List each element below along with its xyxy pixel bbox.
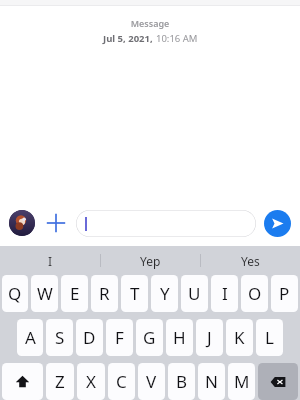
staticText: Jul 5, 2021, bbox=[103, 32, 156, 45]
button[interactable]: Yep bbox=[101, 246, 200, 275]
button[interactable]: N bbox=[198, 363, 225, 400]
button[interactable]: Yes bbox=[201, 246, 300, 275]
staticText: C bbox=[116, 370, 127, 393]
button[interactable]: O bbox=[241, 275, 268, 312]
staticText: Z bbox=[55, 370, 65, 393]
button[interactable]: Shift bbox=[2, 363, 43, 400]
button[interactable]: Z bbox=[46, 363, 74, 400]
button[interactable]: J bbox=[196, 319, 223, 356]
button[interactable]: A bbox=[17, 319, 43, 356]
button[interactable]: P bbox=[271, 275, 298, 312]
button[interactable]: L bbox=[256, 319, 283, 356]
button[interactable]: F bbox=[106, 319, 133, 356]
button[interactable]: G bbox=[136, 319, 163, 356]
staticText: F bbox=[115, 326, 124, 349]
staticText: I bbox=[48, 253, 53, 269]
staticText: W bbox=[37, 282, 53, 305]
button[interactable] bbox=[76, 210, 256, 237]
button[interactable]: I bbox=[211, 275, 238, 312]
staticText: O bbox=[248, 282, 262, 305]
button[interactable]: Y bbox=[151, 275, 178, 312]
button[interactable]: D bbox=[76, 319, 103, 356]
staticText: J bbox=[207, 326, 212, 349]
staticText: A bbox=[25, 326, 36, 349]
button[interactable]: T bbox=[121, 275, 148, 312]
button[interactable]: Contact avatar bbox=[9, 210, 35, 236]
staticText: B bbox=[176, 370, 188, 393]
button[interactable]: M bbox=[228, 363, 255, 400]
button[interactable]: K bbox=[226, 319, 253, 356]
button[interactable]: Q bbox=[2, 275, 28, 312]
staticText: Message bbox=[0, 17, 300, 29]
staticText: I bbox=[222, 282, 228, 305]
staticText: H bbox=[173, 326, 186, 349]
staticText: 10:16 AM bbox=[156, 32, 198, 45]
staticText: N bbox=[205, 370, 218, 393]
button[interactable]: U bbox=[181, 275, 208, 312]
staticText: G bbox=[143, 326, 156, 349]
button[interactable]: S bbox=[46, 319, 73, 356]
button[interactable]: W bbox=[31, 275, 58, 312]
staticText: K bbox=[234, 326, 245, 349]
button[interactable]: R bbox=[91, 275, 118, 312]
staticText: D bbox=[83, 326, 96, 349]
staticText: L bbox=[265, 326, 274, 349]
staticText: E bbox=[70, 282, 80, 305]
button[interactable]: I bbox=[0, 246, 100, 275]
button[interactable]: X bbox=[77, 363, 105, 400]
staticText: S bbox=[55, 326, 65, 349]
staticText: R bbox=[99, 282, 110, 305]
staticText: Yep bbox=[140, 253, 161, 269]
button[interactable]: Backspace bbox=[258, 363, 298, 400]
staticText: Y bbox=[160, 282, 170, 305]
staticText: M bbox=[234, 370, 250, 393]
button[interactable]: Send bbox=[264, 210, 291, 237]
staticText: Q bbox=[8, 282, 22, 305]
staticText: P bbox=[279, 282, 290, 305]
staticText: V bbox=[146, 370, 157, 393]
button[interactable]: Add attachment bbox=[43, 210, 69, 236]
staticText: U bbox=[188, 282, 201, 305]
button[interactable]: V bbox=[138, 363, 165, 400]
button[interactable]: E bbox=[61, 275, 88, 312]
staticText: T bbox=[130, 282, 140, 305]
staticText: Yes bbox=[241, 253, 260, 269]
button[interactable]: B bbox=[168, 363, 195, 400]
staticText: X bbox=[86, 370, 96, 393]
button[interactable]: C bbox=[108, 363, 135, 400]
button[interactable]: H bbox=[166, 319, 193, 356]
